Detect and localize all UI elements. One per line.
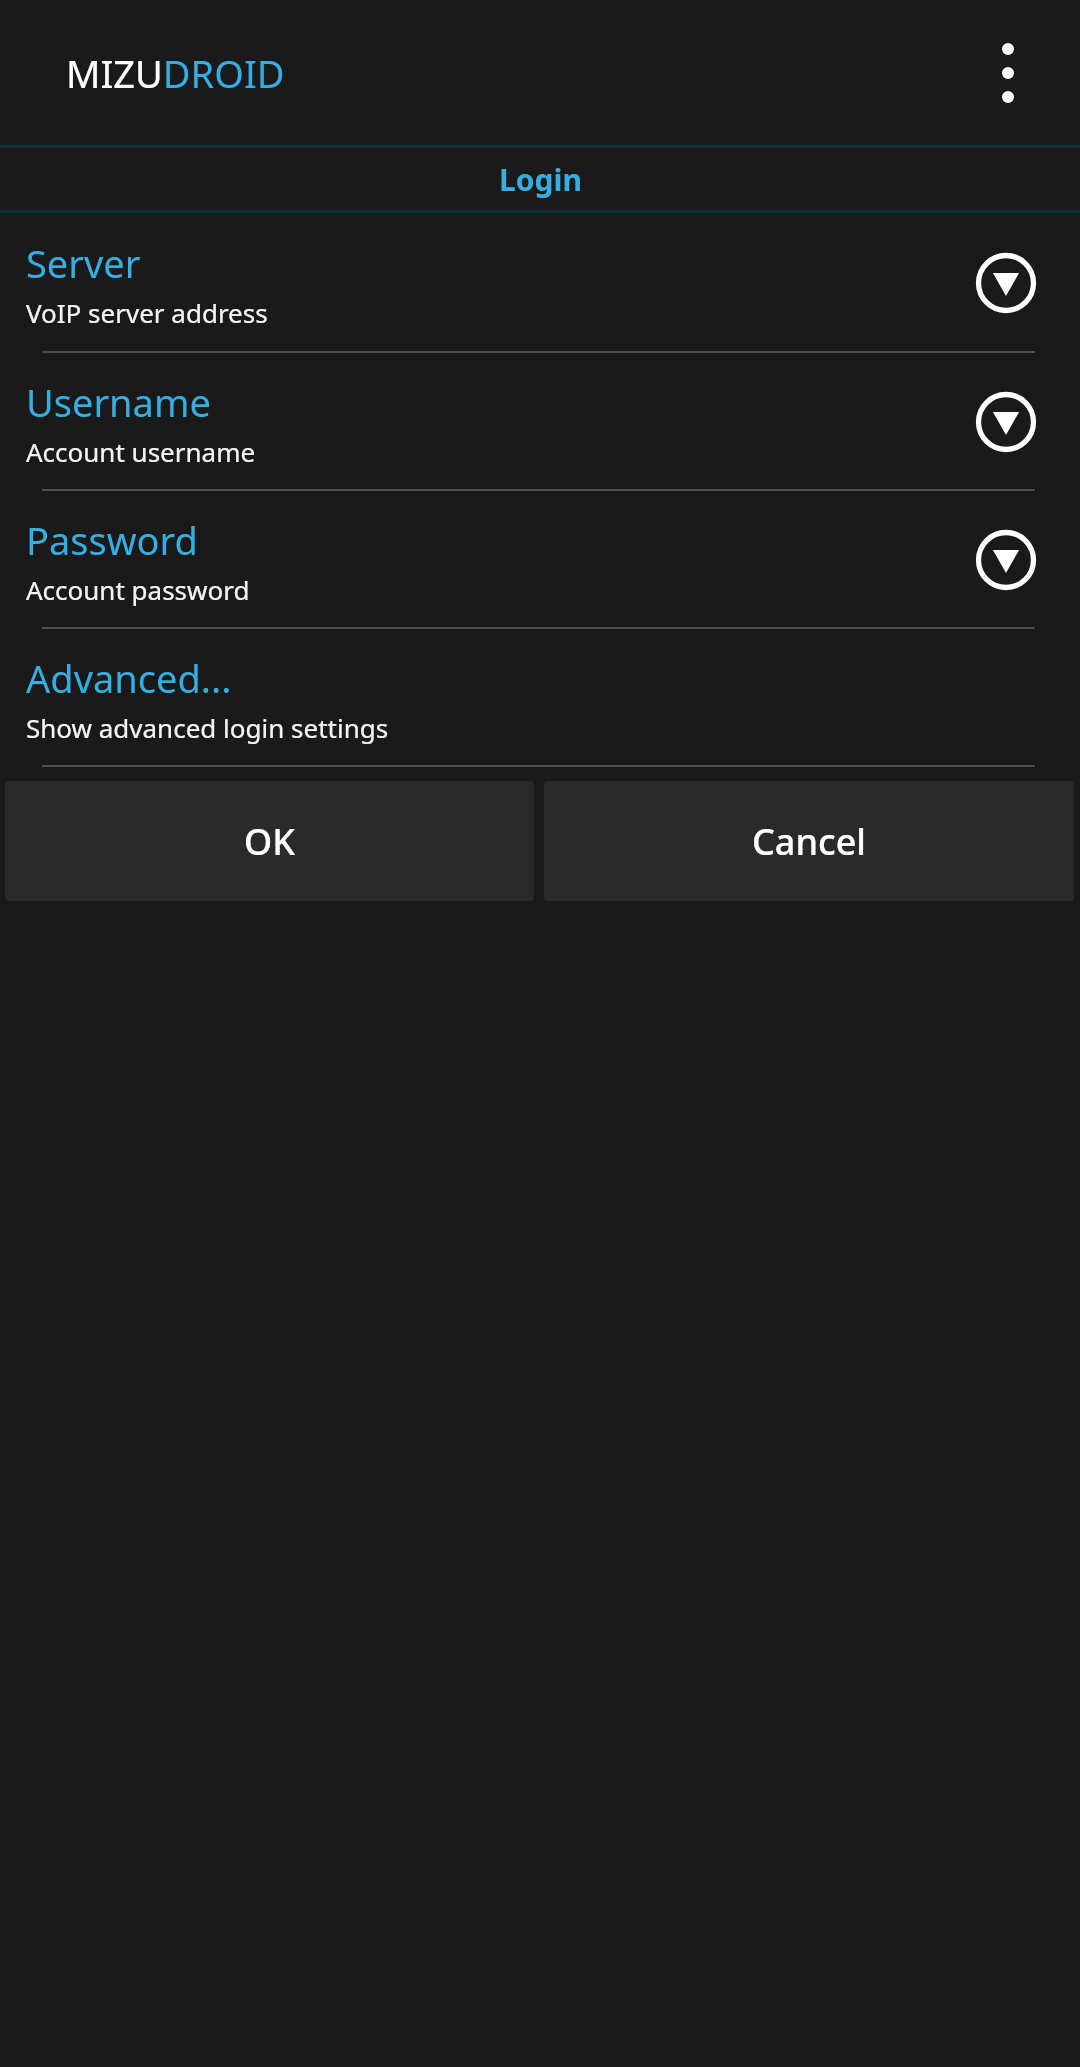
button[interactable]: Cancel (544, 781, 1074, 901)
staticText: Cancel (752, 817, 867, 866)
button[interactable]: More options (960, 25, 1056, 121)
button[interactable]: Server (0, 213, 1080, 353)
staticText: Username (26, 376, 211, 428)
button[interactable]: Expand options (970, 524, 1042, 596)
button[interactable]: Login (0, 148, 1080, 210)
staticText: Server (26, 237, 141, 289)
staticText: Account username (26, 434, 256, 469)
staticText: VoIP server address (26, 295, 268, 330)
staticText: Password (26, 514, 198, 566)
staticText: Account password (26, 572, 250, 607)
button[interactable]: Username (0, 353, 1080, 491)
button[interactable]: Expand options (970, 247, 1042, 319)
button[interactable]: Password (0, 491, 1080, 629)
staticText: Advanced... (26, 652, 232, 704)
staticText: Login (499, 159, 582, 200)
button[interactable]: Expand options (970, 386, 1042, 458)
staticText: Show advanced login settings (26, 710, 389, 745)
button[interactable]: Advanced... (0, 629, 1080, 767)
staticText: MIZUDROID (66, 47, 285, 99)
button[interactable]: OK (5, 781, 534, 901)
staticText: OK (244, 817, 295, 866)
